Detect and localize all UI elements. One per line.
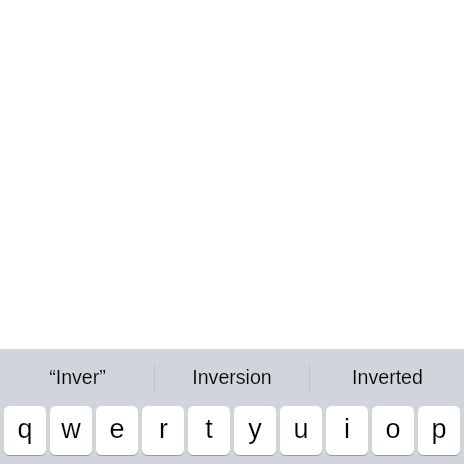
staticText: t [205, 414, 213, 444]
button[interactable]: w [50, 406, 92, 455]
button[interactable]: u [280, 406, 322, 455]
staticText: w [61, 414, 81, 444]
staticText: r [159, 414, 168, 444]
staticText: Inversion [192, 366, 272, 388]
staticText: “Inver” [49, 366, 106, 388]
staticText: y [248, 414, 262, 444]
button[interactable]: r [142, 406, 184, 455]
button[interactable]: t [188, 406, 230, 455]
staticText: o [385, 414, 401, 444]
button[interactable]: Inversion [155, 349, 309, 406]
button[interactable]: Inverted [310, 349, 464, 406]
button[interactable]: o [372, 406, 414, 455]
staticText: u [293, 414, 309, 444]
button[interactable]: p [418, 406, 460, 455]
staticText: p [431, 414, 447, 444]
button[interactable]: “Inver” [0, 349, 154, 406]
button[interactable]: q [4, 406, 46, 455]
staticText: q [17, 414, 33, 444]
button[interactable]: i [326, 406, 368, 455]
staticText: Inverted [352, 366, 423, 388]
button[interactable]: e [96, 406, 138, 455]
button[interactable]: y [234, 406, 276, 455]
staticText: i [344, 414, 350, 444]
staticText: e [109, 414, 125, 444]
